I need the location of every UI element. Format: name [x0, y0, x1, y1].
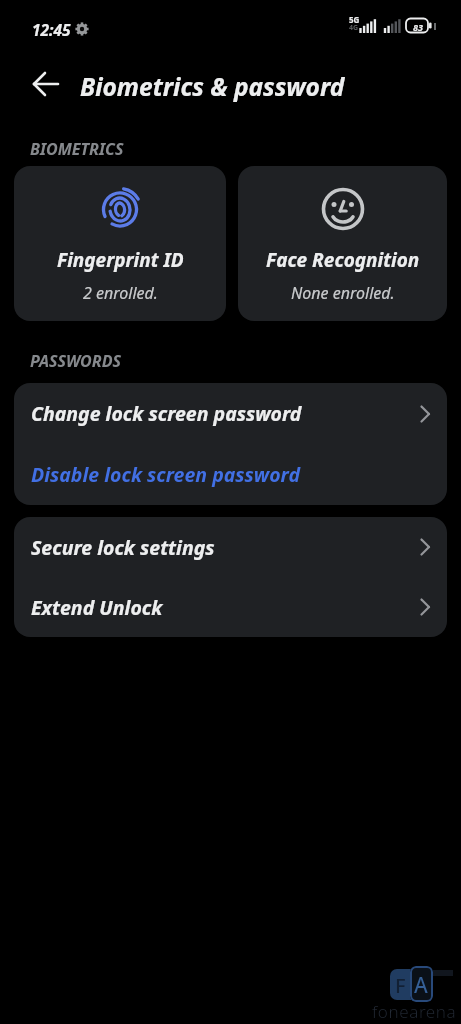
- staticText: 12:45: [32, 19, 71, 40]
- staticText: A: [414, 971, 428, 1000]
- staticText: 5G: [349, 14, 360, 25]
- staticText: 4G: [349, 23, 359, 33]
- staticText: fonearena: [372, 1000, 457, 1023]
- staticText: 83: [408, 21, 428, 33]
- button[interactable]: [24, 62, 68, 106]
- staticText: BIOMETRICS: [30, 138, 124, 160]
- button[interactable]: Extend Unlock: [14, 577, 447, 637]
- staticText: Fingerprint ID: [57, 247, 184, 273]
- staticText: Secure lock settings: [31, 534, 421, 561]
- staticText: Extend Unlock: [31, 594, 421, 621]
- button[interactable]: Fingerprint ID: [14, 166, 226, 321]
- staticText: F: [395, 972, 406, 999]
- staticText: Disable lock screen password: [31, 461, 430, 488]
- staticText: Face Recognition: [266, 247, 420, 273]
- button[interactable]: Disable lock screen password: [14, 444, 447, 505]
- button[interactable]: Face Recognition: [238, 166, 447, 321]
- staticText: Change lock screen password: [31, 400, 421, 427]
- staticText: PASSWORDS: [30, 350, 122, 372]
- button[interactable]: Secure lock settings: [14, 517, 447, 577]
- button[interactable]: Change lock screen password: [14, 383, 447, 444]
- staticText: Biometrics & password: [80, 70, 345, 103]
- staticText: 2 enrolled.: [83, 282, 158, 304]
- staticText: None enrolled.: [291, 282, 395, 304]
